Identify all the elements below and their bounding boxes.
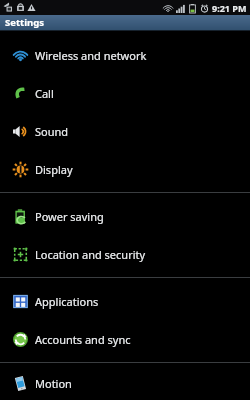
staticText: Wireless and network xyxy=(35,48,147,63)
staticText: Call xyxy=(35,86,54,101)
staticText: Settings xyxy=(5,16,44,29)
staticText: Accounts and sync xyxy=(35,332,131,347)
button[interactable]: Sound xyxy=(0,112,250,150)
staticText: Motion xyxy=(35,376,72,391)
staticText: Display xyxy=(35,162,73,177)
button[interactable]: Location and security xyxy=(0,235,250,273)
staticText: Power saving xyxy=(35,209,104,224)
button[interactable]: Applications xyxy=(0,282,250,320)
button[interactable]: Power saving xyxy=(0,197,250,235)
staticText: Applications xyxy=(35,294,99,309)
staticText: 9:21 PM xyxy=(212,2,247,14)
button[interactable]: Wireless and network xyxy=(0,36,250,74)
button[interactable]: Display xyxy=(0,150,250,188)
button[interactable]: Accounts and sync xyxy=(0,320,250,358)
staticText: Location and security xyxy=(35,247,146,262)
button[interactable]: Motion xyxy=(0,367,250,400)
button[interactable]: Call xyxy=(0,74,250,112)
staticText: Sound xyxy=(35,124,69,139)
